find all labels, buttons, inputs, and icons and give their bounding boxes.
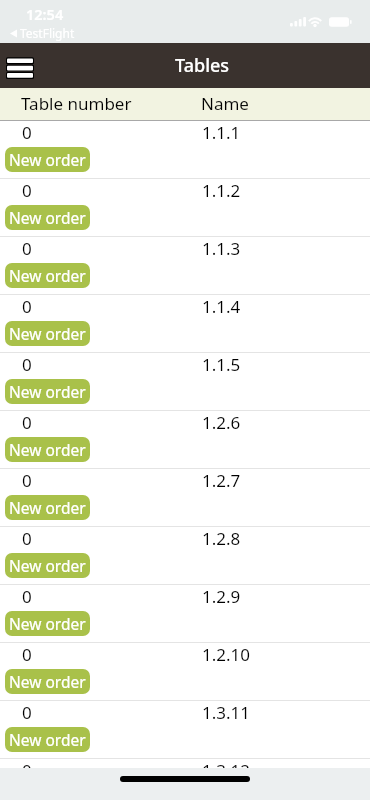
button[interactable]: New order (5, 611, 90, 636)
button[interactable]: New order (5, 727, 90, 752)
button[interactable]: 0 (0, 411, 370, 469)
button[interactable]: New order (5, 205, 90, 230)
staticText: New order (9, 497, 86, 518)
staticText: 0 (22, 527, 32, 550)
staticText: 0 (22, 237, 32, 260)
staticText: 0 (22, 295, 32, 318)
staticText: TestFlight (20, 25, 75, 41)
staticText: 0 (22, 701, 32, 724)
staticText: 1.3.11 (202, 701, 251, 724)
staticText: 1.2.8 (202, 527, 241, 550)
staticText: 0 (22, 121, 32, 144)
button[interactable] (6, 57, 34, 79)
staticText: Table number (21, 92, 132, 115)
staticText: 1.1.5 (202, 353, 241, 376)
button[interactable]: 0 (0, 701, 370, 759)
staticText: New order (9, 729, 86, 750)
staticText: New order (9, 439, 86, 460)
staticText: 0 (22, 759, 32, 782)
staticText: 0 (22, 643, 32, 666)
button[interactable]: New order (5, 669, 90, 694)
button[interactable]: New order (5, 321, 90, 346)
button[interactable]: 0 (0, 527, 370, 585)
staticText: New order (9, 265, 86, 286)
button[interactable]: 0 (0, 759, 370, 800)
staticText: 1.2.6 (202, 411, 241, 434)
staticText: New order (9, 613, 86, 634)
button[interactable]: New order (5, 495, 90, 520)
button[interactable]: 0 (0, 585, 370, 643)
button[interactable]: 0 (0, 179, 370, 237)
staticText: New order (9, 671, 86, 692)
button[interactable]: New order (5, 263, 90, 288)
staticText: New order (9, 381, 86, 402)
staticText: 1.3.12 (202, 759, 251, 782)
staticText: 1.1.4 (202, 295, 241, 318)
staticText: 0 (22, 411, 32, 434)
staticText: 1.1.1 (202, 121, 241, 144)
staticText: 0 (22, 585, 32, 608)
staticText: New order (9, 207, 86, 228)
staticText: 1.2.9 (202, 585, 241, 608)
staticText: 0 (22, 353, 32, 376)
button[interactable]: New order (5, 553, 90, 578)
staticText: 12:54 (26, 4, 64, 24)
staticText: Name (201, 92, 249, 115)
staticText: 0 (22, 469, 32, 492)
button[interactable]: 0 (0, 295, 370, 353)
button[interactable]: New order (5, 379, 90, 404)
staticText: 1.2.10 (202, 643, 251, 666)
staticText: New order (9, 149, 86, 170)
staticText: 1.1.3 (202, 237, 241, 260)
staticText: 0 (22, 179, 32, 202)
button[interactable]: New order (5, 147, 90, 172)
staticText: 1.2.7 (202, 469, 241, 492)
button[interactable]: 0 (0, 469, 370, 527)
button[interactable]: New order (5, 437, 90, 462)
button[interactable]: 0 (0, 237, 370, 295)
button[interactable]: 0 (0, 121, 370, 179)
staticText: Tables (175, 53, 230, 78)
staticText: New order (9, 323, 86, 344)
staticText: New order (9, 555, 86, 576)
button[interactable]: 0 (0, 353, 370, 411)
staticText: 1.1.2 (202, 179, 241, 202)
button[interactable]: 0 (0, 643, 370, 701)
